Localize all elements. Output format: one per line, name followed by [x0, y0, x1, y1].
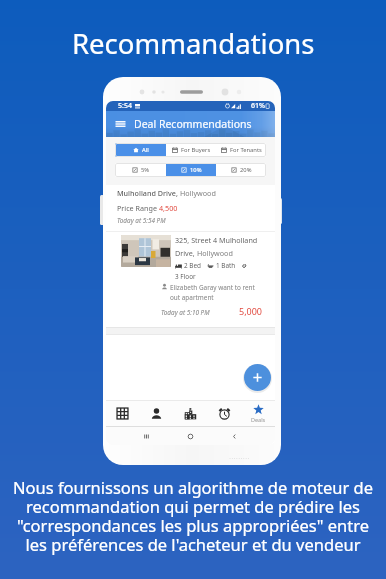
button[interactable]: Buildings — [173, 401, 207, 426]
staticText: Nous fournissons un algorithme de moteur… — [13, 476, 373, 556]
staticText: 20% — [240, 166, 252, 174]
staticText: Mulholland Drive, — [117, 188, 180, 198]
staticText: Recommandations — [72, 25, 315, 62]
staticText: For Buyers — [181, 146, 211, 154]
staticText: For Tenants — [230, 146, 262, 154]
staticText: 61% — [251, 101, 265, 111]
staticText: Drive, — [175, 248, 197, 258]
button[interactable]: Menu — [115, 111, 275, 137]
button[interactable]: Alarm — [207, 401, 241, 426]
staticText: Hollywood — [197, 248, 233, 258]
button[interactable]: Deals — [241, 401, 275, 426]
button[interactable]: Add — [244, 364, 271, 391]
staticText: 2 Bed — [184, 261, 202, 270]
staticText: Price Range — [117, 203, 159, 213]
staticText: 3 Floor — [175, 272, 196, 281]
staticText: Deals — [251, 416, 266, 423]
staticText: 4,500 — [159, 203, 178, 213]
staticText: 10% — [190, 166, 202, 174]
staticText: 5:54 — [118, 101, 132, 111]
staticText: Today at 5:10 PM — [161, 308, 210, 317]
button[interactable]: Dashboard — [106, 401, 139, 426]
button[interactable]: Mulholland Drive, — [106, 185, 275, 335]
button[interactable]: 10% — [166, 163, 216, 177]
staticText: 5,000 — [239, 305, 263, 317]
button[interactable]: For Tenants — [216, 143, 266, 157]
staticText: Deal Recommendations — [134, 117, 252, 131]
staticText: Hollywood — [180, 188, 216, 198]
button[interactable]: For Buyers — [166, 143, 216, 157]
staticText: 325, Street 4 Mulholland — [175, 235, 258, 245]
staticText: Today at 5:54 PM — [117, 216, 166, 225]
button[interactable]: 20% — [216, 163, 266, 177]
staticText: 1 Bath — [216, 261, 236, 270]
button[interactable]: Profile — [139, 401, 173, 426]
staticText: Elizabeth Garay want to rent out apartme… — [170, 283, 255, 302]
staticText: All — [142, 146, 149, 154]
button[interactable]: All — [115, 143, 166, 157]
button[interactable]: 5% — [115, 163, 166, 177]
staticText: 5% — [141, 166, 150, 174]
other: Menu — [115, 120, 126, 128]
